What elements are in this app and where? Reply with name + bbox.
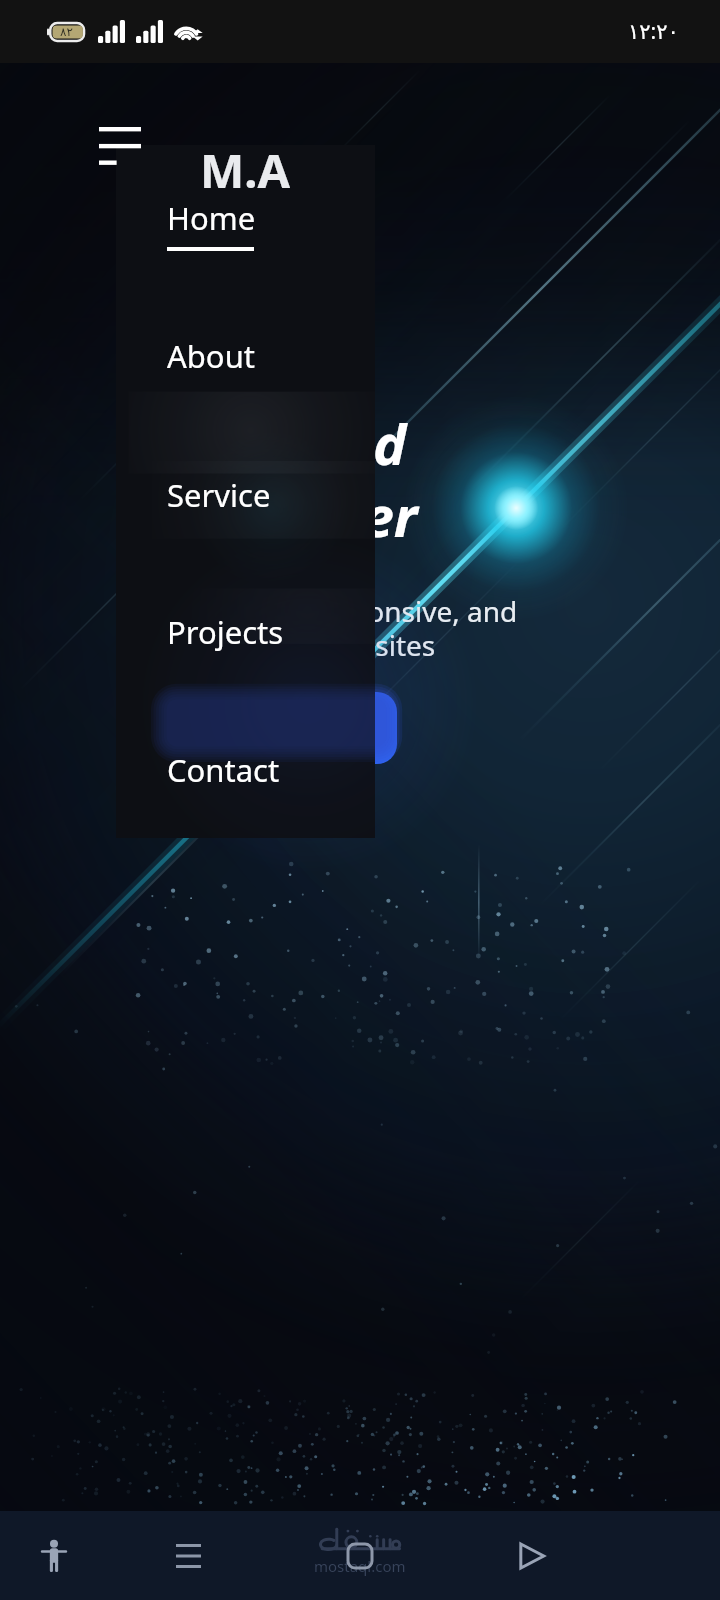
button[interactable]: Home (320, 1511, 400, 1600)
staticText: Service (167, 474, 271, 516)
staticText: Contact (167, 749, 280, 791)
staticText: ٨٢ (60, 25, 73, 39)
button[interactable]: Accessibility (14, 1511, 94, 1600)
button[interactable]: Back (492, 1511, 572, 1600)
button[interactable]: Home (116, 193, 375, 259)
staticText: I build fast, responsive, and (156, 592, 518, 630)
button[interactable]: Open navigation menu (84, 112, 156, 178)
staticText: Projects (167, 611, 284, 653)
staticText: modern websites (208, 626, 436, 664)
staticText: Mohamed (142, 405, 407, 481)
button[interactable]: Service (116, 470, 375, 524)
staticText: Developer (152, 477, 418, 553)
button[interactable]: Projects (116, 607, 375, 661)
staticText: Home (167, 197, 256, 239)
staticText: ١٢:٢٠ (628, 17, 679, 46)
staticText: M.A (200, 138, 291, 202)
button[interactable]: Hire Me (160, 692, 397, 764)
button[interactable]: Contact (116, 745, 375, 799)
button[interactable]: About (116, 331, 375, 385)
staticText: About (167, 335, 255, 377)
button[interactable]: Recent apps (148, 1511, 228, 1600)
staticText: mostaql.com (314, 1556, 406, 1576)
